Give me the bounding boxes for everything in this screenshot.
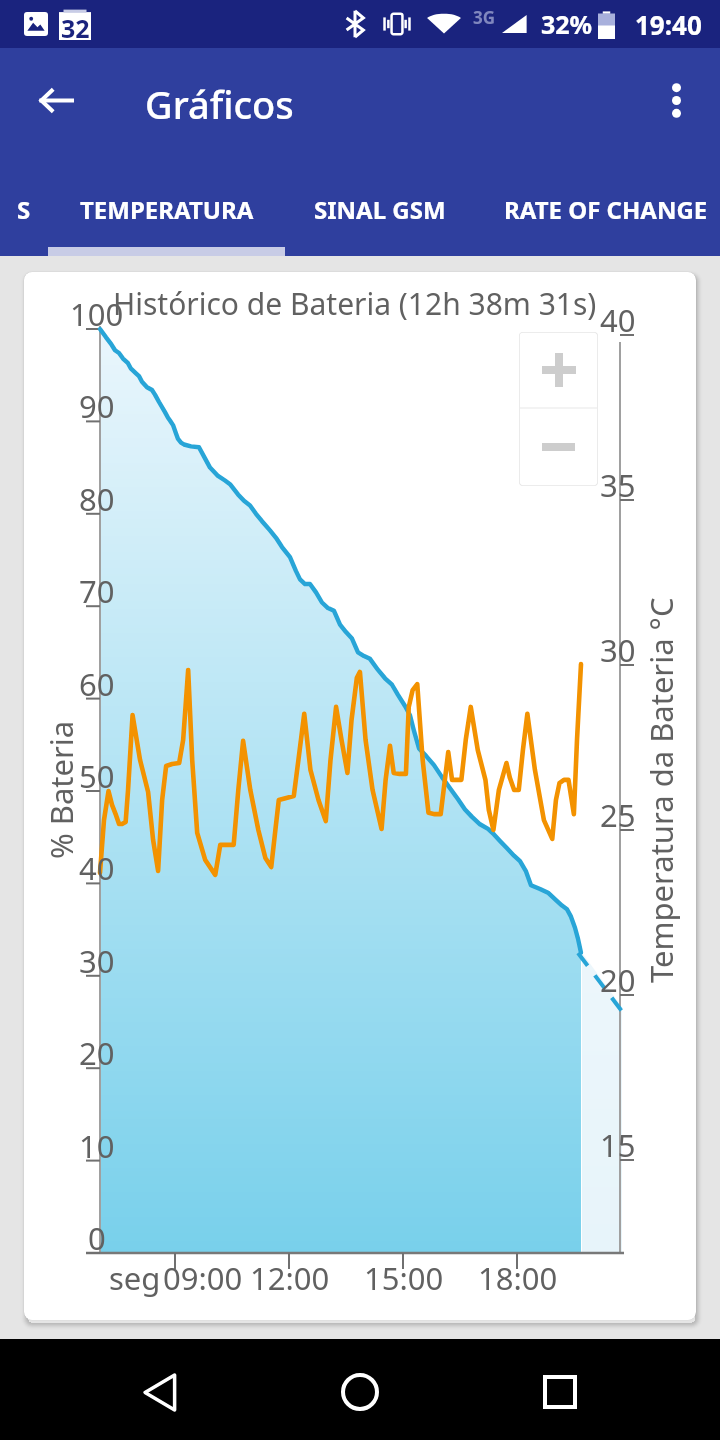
- staticText: TEMPERATURA: [80, 193, 254, 226]
- staticText: 18:00: [478, 1257, 558, 1299]
- staticText: 30: [79, 940, 115, 982]
- staticText: 90: [79, 385, 115, 427]
- staticText: Histórico de Bateria (12h 38m 31s): [113, 283, 597, 324]
- staticText: 32: [61, 11, 90, 42]
- staticText: 80: [79, 478, 115, 520]
- staticText: 20: [79, 1032, 115, 1074]
- staticText: 12:00: [250, 1257, 330, 1299]
- staticText: 15: [600, 1124, 636, 1166]
- staticText: 20: [600, 959, 636, 1001]
- staticText: 40: [79, 847, 115, 889]
- staticText: RATE OF CHANGE: [504, 193, 708, 226]
- button[interactable]: More options: [632, 56, 720, 144]
- staticText: 15:00: [364, 1257, 444, 1299]
- staticText: SINAL GSM: [314, 193, 446, 226]
- staticText: Gráficos: [145, 78, 294, 130]
- staticText: 60: [79, 663, 115, 705]
- button[interactable]: RATE OF CHANGE: [474, 152, 720, 256]
- button[interactable]: Zoom out: [519, 408, 598, 486]
- staticText: 3G: [473, 6, 496, 29]
- staticText: 40: [600, 299, 636, 341]
- staticText: 10: [79, 1125, 115, 1167]
- button[interactable]: Home: [310, 1342, 410, 1440]
- staticText: 70: [79, 570, 115, 612]
- staticText: 25: [600, 794, 636, 836]
- button[interactable]: TEMPERATURA: [48, 152, 285, 256]
- button[interactable]: Back: [110, 1342, 210, 1440]
- button[interactable]: Zoom in: [519, 332, 598, 408]
- staticText: 0: [88, 1217, 106, 1259]
- staticText: 100: [70, 293, 124, 335]
- staticText: 35: [600, 464, 636, 506]
- button[interactable]: S: [0, 152, 48, 256]
- staticText: % Bateria: [40, 720, 82, 859]
- staticText: 50: [79, 755, 115, 797]
- staticText: 30: [600, 629, 636, 671]
- staticText: S: [17, 193, 31, 226]
- staticText: 09:00: [163, 1257, 243, 1299]
- button[interactable]: SINAL GSM: [285, 152, 474, 256]
- button[interactable]: Recent apps: [510, 1342, 610, 1440]
- staticText: 32%: [541, 7, 593, 41]
- button[interactable]: Back: [0, 48, 112, 152]
- staticText: seg: [109, 1257, 161, 1299]
- staticText: Temperatura da Bateria °C: [640, 597, 682, 983]
- staticText: 19:40: [635, 7, 702, 42]
